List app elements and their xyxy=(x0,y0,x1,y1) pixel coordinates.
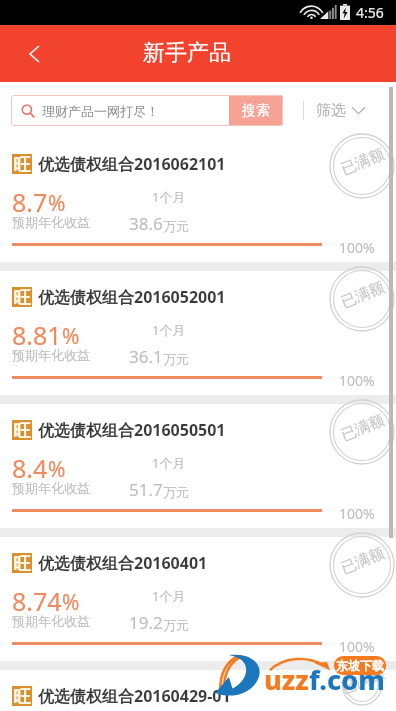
staticText: 8.4 xyxy=(12,451,48,485)
staticText: 预期年化收益 xyxy=(12,480,90,496)
staticText: 已满额 xyxy=(338,664,387,698)
staticText: % xyxy=(48,189,66,218)
button[interactable]: 已满额 xyxy=(0,670,396,711)
button[interactable]: 已满额 xyxy=(0,138,396,262)
button[interactable]: 筛选 xyxy=(316,95,365,126)
staticText: 已满额 xyxy=(338,544,387,578)
staticText: 预期年化收益 xyxy=(12,347,90,363)
staticText: 万元 xyxy=(163,218,189,234)
staticText: 已满额 xyxy=(338,145,387,179)
staticText: 19.2 xyxy=(129,611,163,634)
staticText: 理财产品一网打尽！ xyxy=(42,103,159,119)
staticText: 8.7 xyxy=(12,185,48,219)
staticText: 东坡下载 xyxy=(336,658,384,673)
staticText: 100% xyxy=(339,637,375,656)
staticText: 1个月 xyxy=(152,454,186,472)
staticText: 预期年化收益 xyxy=(12,214,90,230)
staticText: f.com xyxy=(309,661,385,698)
staticText: 1个月 xyxy=(152,587,186,605)
staticText: 8.81 xyxy=(12,318,62,352)
staticText: 100% xyxy=(339,238,375,257)
staticText: 万元 xyxy=(163,484,189,500)
staticText: 优选债权组合2016062101 xyxy=(38,153,226,175)
staticText: 36.1 xyxy=(129,345,163,368)
staticText: 100% xyxy=(339,371,375,390)
staticText: 优选债权组合20160401 xyxy=(38,552,208,574)
staticText: 预期年化收益 xyxy=(12,613,90,629)
button[interactable]: 已满额 xyxy=(0,537,396,661)
staticText: 优选债权组合2016052001 xyxy=(38,286,226,308)
button[interactable]: 搜索 xyxy=(229,95,283,126)
staticText: 1个月 xyxy=(152,321,186,339)
button[interactable]: 已满额 xyxy=(0,271,396,395)
staticText: 优选债权组合2016050501 xyxy=(38,419,226,441)
staticText: 旺 xyxy=(13,287,31,307)
staticText: 旺 xyxy=(13,154,31,174)
staticText: % xyxy=(62,322,80,351)
staticText: uzz xyxy=(264,661,309,698)
staticText: 万元 xyxy=(163,617,189,633)
staticText: 筛选 xyxy=(316,101,346,120)
staticText: % xyxy=(62,588,80,617)
staticText: 万元 xyxy=(163,351,189,367)
staticText: 旺 xyxy=(13,553,31,573)
button[interactable]: 已满额 xyxy=(0,404,396,528)
staticText: 新手产品 xyxy=(143,39,231,67)
button[interactable]: 理财产品一网打尽！ xyxy=(11,95,283,126)
staticText: 已满额 xyxy=(338,278,387,312)
staticText: 100% xyxy=(339,504,375,523)
staticText: 旺 xyxy=(13,420,31,440)
staticText: 已满额 xyxy=(338,411,387,445)
staticText: 搜索 xyxy=(242,102,270,120)
staticText: 38.6 xyxy=(129,212,163,235)
button[interactable]: Back xyxy=(10,25,54,82)
staticText: 51.7 xyxy=(129,478,163,501)
staticText: 1个月 xyxy=(152,188,186,206)
staticText: % xyxy=(48,455,66,484)
staticText: 4:56 xyxy=(356,3,384,22)
staticText: 优选债权组合20160429-01 xyxy=(38,685,231,707)
staticText: 8.74 xyxy=(12,584,62,618)
staticText: 旺 xyxy=(13,686,31,706)
